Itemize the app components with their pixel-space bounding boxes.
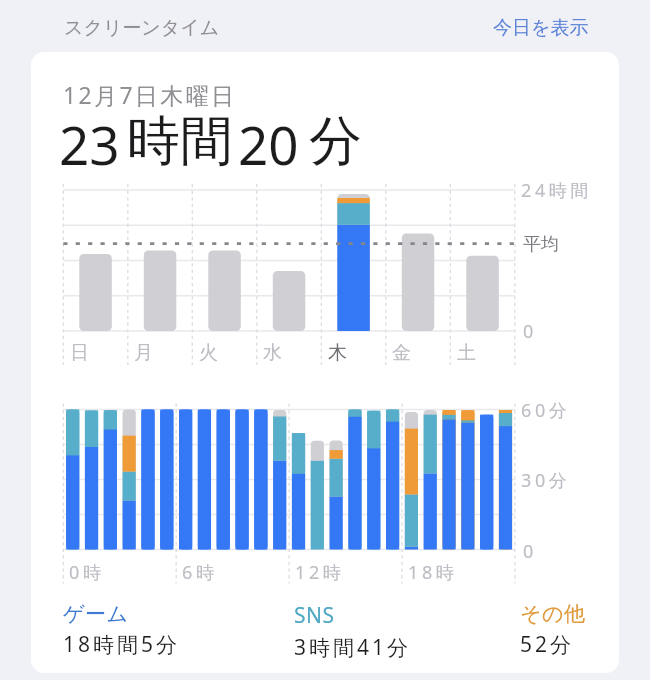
staticText: スクリーンタイム [64, 16, 220, 40]
staticText: その他 [520, 601, 586, 627]
staticText: 木 [328, 341, 347, 365]
staticText: 分 [309, 108, 362, 175]
staticText: 平均 [523, 233, 559, 256]
button[interactable]: その他 [520, 601, 586, 659]
staticText: 20 [238, 108, 299, 180]
staticText: 水 [263, 341, 282, 365]
staticText: 18時 [408, 560, 458, 585]
staticText: 火 [199, 341, 218, 365]
staticText: 0時 [69, 560, 105, 585]
staticText: 52分 [520, 630, 575, 659]
staticText: 日 [70, 341, 89, 365]
staticText: 23 [59, 108, 120, 180]
staticText: SNS [294, 601, 335, 630]
staticText: 今日を表示 [493, 16, 589, 40]
staticText: 12月7日木曜日 [63, 79, 237, 110]
button[interactable]: SNS [294, 601, 412, 662]
staticText: 時間 [127, 108, 233, 175]
staticText: 6時 [182, 560, 218, 585]
staticText: 60分 [521, 398, 571, 423]
button[interactable]: 今日を表示 [493, 16, 589, 40]
staticText: 土 [457, 341, 476, 365]
staticText: 30分 [521, 468, 571, 493]
staticText: 月 [134, 341, 153, 365]
staticText: 24時間 [521, 178, 592, 203]
staticText: 3時間41分 [294, 633, 412, 662]
button[interactable]: 12月7日木曜日 [31, 52, 619, 673]
staticText: 12時 [295, 560, 345, 585]
button[interactable]: ゲーム [63, 601, 181, 659]
staticText: ゲーム [63, 601, 129, 627]
staticText: 0 [523, 319, 537, 344]
staticText: 0 [523, 539, 537, 564]
staticText: 18時間5分 [63, 630, 181, 659]
staticText: 金 [392, 341, 411, 365]
